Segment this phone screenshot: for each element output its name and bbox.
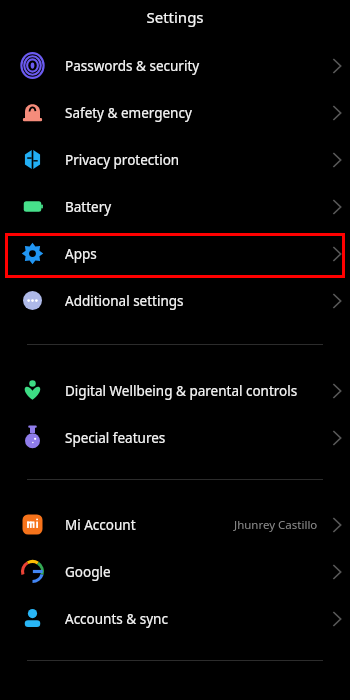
button[interactable]: Battery — [0, 183, 350, 230]
staticText: Additional settings — [65, 292, 323, 310]
staticText: Apps — [65, 245, 323, 263]
button[interactable]: Additional settings — [0, 277, 350, 324]
staticText: Settings — [146, 7, 204, 27]
staticText: Mi Account — [65, 516, 234, 534]
staticText: Special features — [65, 429, 323, 447]
other: Highlighted Apps row — [5, 233, 345, 278]
button[interactable]: Passwords & security — [0, 42, 350, 89]
staticText: Accounts & sync — [65, 610, 323, 628]
staticText: Passwords & security — [65, 57, 323, 75]
staticText: Jhunrey Castillo — [234, 517, 318, 533]
staticText: Google — [65, 563, 323, 581]
button[interactable]: Apps — [0, 230, 350, 277]
staticText: Safety & emergency — [65, 104, 323, 122]
button[interactable]: Privacy protection — [0, 136, 350, 183]
button[interactable]: Safety & emergency — [0, 89, 350, 136]
button[interactable]: Special features — [0, 414, 350, 461]
staticText: Digital Wellbeing & parental controls — [65, 382, 323, 400]
staticText: Privacy protection — [65, 151, 323, 169]
button[interactable]: Mi Account — [0, 501, 350, 548]
button[interactable]: Accounts & sync — [0, 595, 350, 642]
button[interactable]: Google — [0, 548, 350, 595]
staticText: Battery — [65, 198, 323, 216]
button[interactable]: Digital Wellbeing & parental controls — [0, 367, 350, 414]
